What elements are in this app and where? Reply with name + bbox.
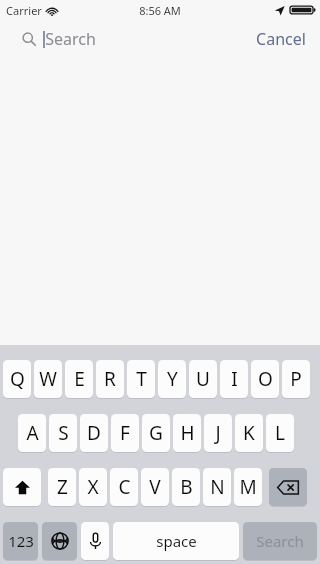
button[interactable]: Dictate xyxy=(81,522,109,560)
staticText: S xyxy=(58,420,69,446)
staticText: A xyxy=(26,420,39,446)
button[interactable]: Y xyxy=(158,360,186,398)
staticText: B xyxy=(180,474,193,500)
button[interactable]: F xyxy=(111,414,139,452)
staticText: 8:56 AM xyxy=(139,3,181,18)
button[interactable]: Cancel xyxy=(252,24,310,54)
button[interactable]: R xyxy=(96,360,124,398)
staticText: Search xyxy=(256,531,304,551)
button[interactable]: E xyxy=(65,360,93,398)
staticText: Search xyxy=(45,28,96,50)
button[interactable]: Shift xyxy=(3,468,41,506)
button[interactable]: Search xyxy=(22,28,96,50)
staticText: C xyxy=(118,474,131,500)
button[interactable]: G xyxy=(142,414,170,452)
button[interactable]: B xyxy=(172,468,200,506)
staticText: N xyxy=(210,474,225,500)
staticText: D xyxy=(87,420,101,446)
staticText: O xyxy=(258,366,273,392)
staticText: G xyxy=(149,420,163,446)
staticText: Cancel xyxy=(256,28,306,50)
staticText: L xyxy=(275,420,285,446)
button[interactable]: J xyxy=(204,414,232,452)
button[interactable]: S xyxy=(49,414,77,452)
staticText: E xyxy=(74,366,85,392)
staticText: K xyxy=(243,420,255,446)
staticText: T xyxy=(136,366,147,392)
button[interactable]: W xyxy=(34,360,62,398)
button[interactable]: Switch keyboard xyxy=(42,522,77,560)
button[interactable]: M xyxy=(234,468,262,506)
button[interactable]: 123 xyxy=(3,522,38,560)
button[interactable]: D xyxy=(80,414,108,452)
button[interactable]: T xyxy=(127,360,155,398)
staticText: Q xyxy=(10,366,25,392)
button[interactable]: U xyxy=(189,360,217,398)
staticText: M xyxy=(239,474,257,500)
staticText: X xyxy=(87,474,99,500)
button[interactable]: I xyxy=(220,360,248,398)
staticText: Carrier xyxy=(6,3,42,18)
button[interactable]: Z xyxy=(48,468,76,506)
staticText: P xyxy=(290,366,302,392)
staticText: Y xyxy=(167,366,178,392)
staticText: Z xyxy=(57,474,68,500)
button[interactable]: O xyxy=(251,360,279,398)
button[interactable]: V xyxy=(141,468,169,506)
staticText: R xyxy=(104,366,116,392)
staticText: U xyxy=(196,366,210,392)
staticText: J xyxy=(215,420,221,446)
staticText: I xyxy=(231,366,238,392)
staticText: space xyxy=(156,531,197,551)
button[interactable]: space xyxy=(113,522,239,560)
button[interactable]: L xyxy=(266,414,294,452)
button[interactable]: C xyxy=(110,468,138,506)
staticText: F xyxy=(120,420,130,446)
staticText: W xyxy=(39,366,57,392)
staticText: V xyxy=(149,474,161,500)
button[interactable]: N xyxy=(203,468,231,506)
button[interactable]: Search xyxy=(243,522,317,560)
button[interactable]: Q xyxy=(3,360,31,398)
staticText: H xyxy=(180,420,195,446)
button[interactable]: H xyxy=(173,414,201,452)
staticText: 123 xyxy=(8,531,34,551)
button[interactable]: A xyxy=(18,414,46,452)
button[interactable]: K xyxy=(235,414,263,452)
button[interactable]: P xyxy=(282,360,310,398)
button[interactable]: Backspace xyxy=(269,468,307,506)
button[interactable]: X xyxy=(79,468,107,506)
